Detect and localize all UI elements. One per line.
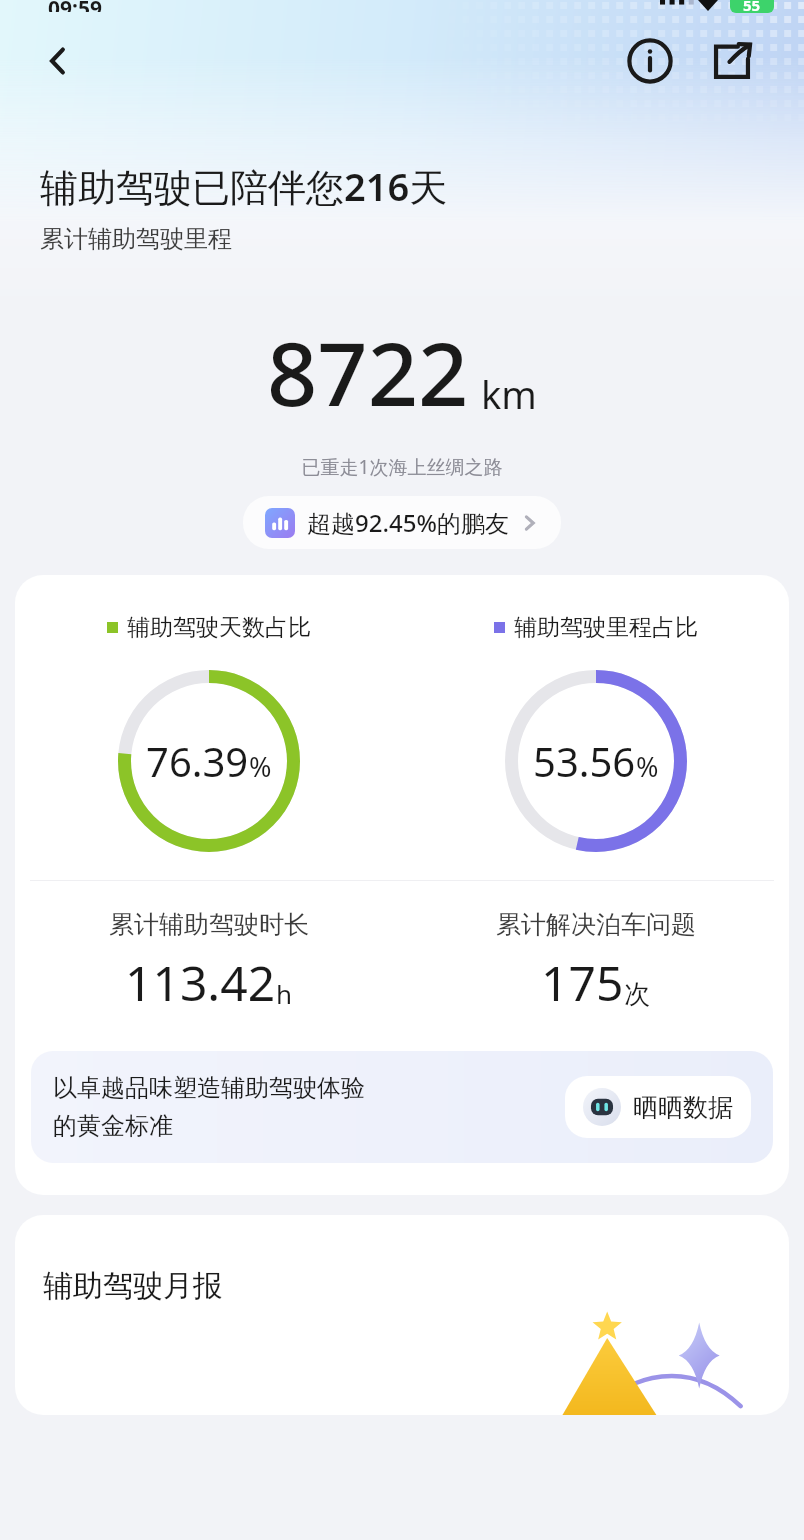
staticText: 175: [541, 950, 624, 1015]
staticText: %: [249, 748, 272, 785]
staticText: 累计辅助驾驶里程: [40, 224, 232, 254]
staticText: 以卓越品味塑造辅助驾驶体验: [53, 1073, 365, 1103]
staticText: 的黄金标准: [53, 1111, 173, 1141]
staticText: 辅助驾驶已陪伴您216天: [40, 160, 448, 212]
button[interactable]: 晒晒数据: [565, 1076, 751, 1138]
staticText: km: [481, 368, 537, 420]
staticText: 辅助驾驶天数占比: [127, 613, 311, 642]
button[interactable]: Info: [622, 33, 678, 89]
staticText: h: [276, 976, 293, 1011]
staticText: 53.56: [533, 734, 636, 788]
staticText: 累计解决泊车问题: [496, 909, 696, 940]
staticText: 8722: [267, 312, 469, 432]
button[interactable]: 超越92.45%的鹏友: [243, 496, 561, 549]
staticText: 超越92.45%的鹏友: [307, 506, 509, 539]
staticText: 累计辅助驾驶时长: [109, 909, 309, 940]
staticText: 55: [743, 0, 761, 13]
staticText: 辅助驾驶月报: [43, 1267, 223, 1305]
staticText: 次: [624, 978, 650, 1011]
button[interactable]: Back: [30, 33, 86, 89]
staticText: %: [636, 748, 659, 785]
staticText: 76.39: [146, 734, 249, 788]
button[interactable]: Share: [704, 33, 760, 89]
staticText: 09:59: [48, 0, 102, 12]
staticText: 已重走1次海上丝绸之路: [0, 454, 804, 480]
button[interactable]: 辅助驾驶月报: [15, 1215, 789, 1415]
staticText: 辅助驾驶里程占比: [514, 613, 698, 642]
staticText: 晒晒数据: [633, 1092, 733, 1123]
staticText: 113.42: [125, 950, 276, 1015]
